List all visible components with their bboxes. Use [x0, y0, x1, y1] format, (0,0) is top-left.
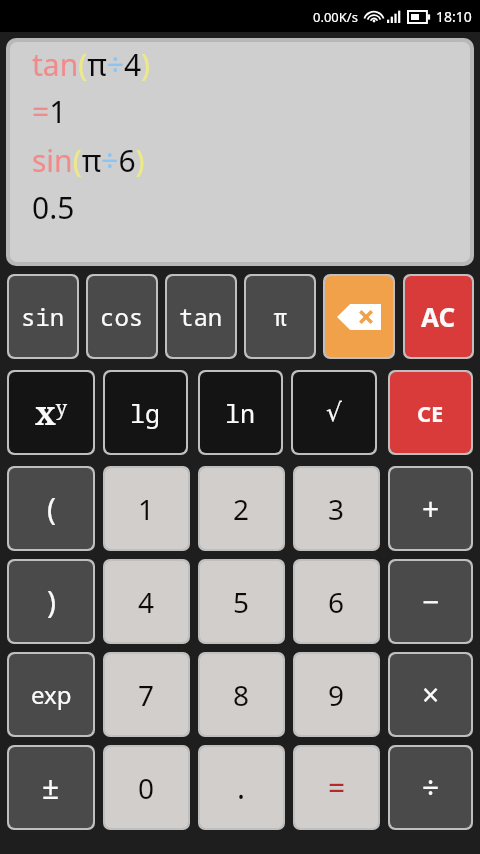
- button[interactable]: =: [295, 747, 378, 828]
- staticText: sin(π÷6): [32, 140, 145, 181]
- staticText: ±: [42, 767, 60, 808]
- staticText: 0.5: [32, 187, 75, 228]
- button[interactable]: AC: [405, 276, 472, 357]
- button[interactable]: ÷: [390, 747, 471, 828]
- staticText: 0: [138, 769, 155, 807]
- staticText: exp: [31, 678, 72, 711]
- staticText: (: [47, 488, 56, 529]
- button[interactable]: 7: [105, 654, 188, 735]
- staticText: 2: [233, 490, 250, 528]
- button[interactable]: (: [9, 468, 93, 549]
- button[interactable]: 3: [295, 468, 378, 549]
- staticText: ÷: [422, 767, 440, 808]
- staticText: 4: [138, 583, 155, 621]
- button[interactable]: ×: [390, 654, 471, 735]
- button[interactable]: √: [293, 372, 375, 453]
- button[interactable]: 4: [105, 561, 188, 642]
- staticText: lg: [130, 396, 161, 430]
- staticText: 5: [233, 583, 250, 621]
- staticText: π: [273, 300, 288, 333]
- staticText: tan: [179, 300, 223, 333]
- button[interactable]: 6: [295, 561, 378, 642]
- staticText: =1: [32, 91, 67, 132]
- staticText: xy: [35, 391, 67, 435]
- button[interactable]: ): [9, 561, 93, 642]
- staticText: ): [47, 581, 56, 622]
- button[interactable]: 0: [105, 747, 188, 828]
- button[interactable]: Backspace: [325, 276, 393, 357]
- button[interactable]: tan: [167, 276, 235, 357]
- button[interactable]: lg: [105, 372, 186, 453]
- staticText: =: [328, 767, 346, 808]
- button[interactable]: xy: [9, 372, 93, 453]
- staticText: AC: [421, 299, 456, 334]
- staticText: 7: [138, 676, 155, 714]
- button[interactable]: ±: [9, 747, 93, 828]
- staticText: .: [237, 767, 246, 808]
- button[interactable]: 8: [200, 654, 283, 735]
- button[interactable]: +: [390, 468, 471, 549]
- staticText: ×: [422, 674, 440, 715]
- button[interactable]: 9: [295, 654, 378, 735]
- staticText: sin: [21, 300, 65, 333]
- staticText: 0.00K/s: [313, 8, 358, 26]
- button[interactable]: ln: [200, 372, 281, 453]
- staticText: 18:10: [436, 7, 472, 26]
- staticText: cos: [100, 300, 144, 333]
- button[interactable]: CE: [390, 372, 471, 453]
- button[interactable]: 2: [200, 468, 283, 549]
- button[interactable]: sin: [9, 276, 77, 357]
- button[interactable]: 5: [200, 561, 283, 642]
- staticText: CE: [417, 398, 444, 428]
- staticText: tan(π÷4): [32, 44, 151, 85]
- button[interactable]: π: [246, 276, 314, 357]
- button[interactable]: .: [200, 747, 283, 828]
- staticText: √: [326, 398, 342, 427]
- button[interactable]: cos: [88, 276, 156, 357]
- staticText: ln: [225, 396, 256, 430]
- staticText: +: [422, 488, 440, 529]
- staticText: 1: [138, 490, 155, 528]
- button[interactable]: exp: [9, 654, 93, 735]
- staticText: 3: [328, 490, 345, 528]
- staticText: 6: [328, 583, 345, 621]
- staticText: −: [422, 581, 440, 622]
- staticText: 9: [328, 676, 345, 714]
- button[interactable]: 1: [105, 468, 188, 549]
- staticText: 8: [233, 676, 250, 714]
- button[interactable]: −: [390, 561, 471, 642]
